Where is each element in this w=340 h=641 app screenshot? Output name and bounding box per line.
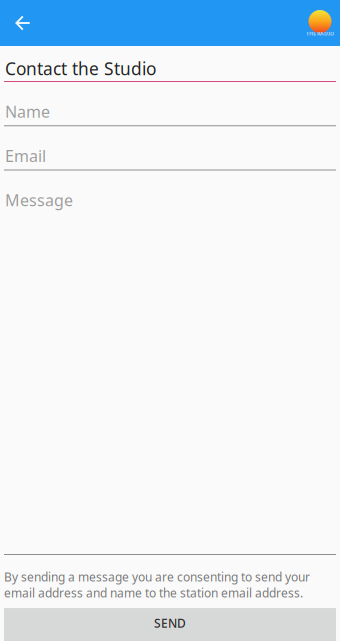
button[interactable]: Message bbox=[0, 170, 340, 211]
button[interactable]: SEND bbox=[4, 608, 336, 641]
staticText: THE RADIO bbox=[306, 30, 334, 37]
staticText: Contact the Studio bbox=[5, 57, 156, 80]
staticText: SEND bbox=[154, 615, 186, 631]
button[interactable]: Name bbox=[0, 82, 340, 126]
staticText: Name bbox=[5, 101, 50, 122]
staticText: Message bbox=[5, 189, 73, 211]
staticText: By sending a message you are consenting … bbox=[4, 569, 310, 601]
staticText: Email bbox=[5, 145, 46, 166]
button[interactable]: Email bbox=[0, 126, 340, 170]
button[interactable]: Back bbox=[0, 0, 46, 46]
button[interactable]: The Radio station home bbox=[307, 0, 340, 46]
